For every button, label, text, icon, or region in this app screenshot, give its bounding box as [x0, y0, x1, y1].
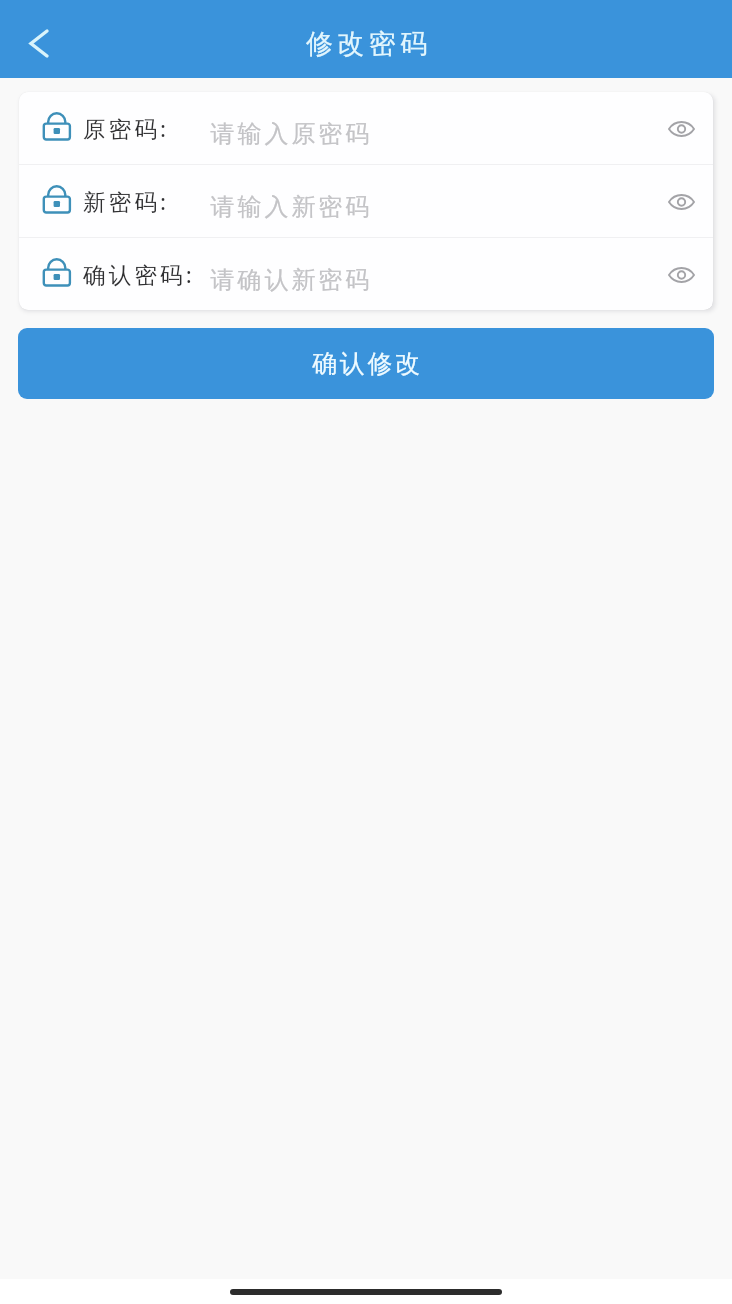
- staticText: 原密码:: [83, 113, 170, 144]
- button[interactable]: 确认密码:: [19, 238, 713, 310]
- staticText: 请输入新密码: [209, 192, 371, 222]
- button[interactable]: 确认修改: [18, 328, 714, 399]
- staticText: 请输入原密码: [209, 119, 371, 149]
- staticText: 确认修改: [312, 348, 423, 379]
- button[interactable]: 原密码:: [19, 92, 713, 164]
- staticText: 修改密码: [306, 27, 432, 61]
- button[interactable]: 新密码:: [19, 165, 713, 237]
- staticText: 确认密码:: [83, 259, 196, 290]
- button[interactable]: Show password: [657, 105, 705, 153]
- button[interactable]: Back: [4, 8, 70, 74]
- staticText: 请确认新密码: [209, 265, 371, 295]
- staticText: 新密码:: [83, 186, 170, 217]
- button[interactable]: Show password: [657, 178, 705, 226]
- button[interactable]: Show password: [657, 251, 705, 299]
